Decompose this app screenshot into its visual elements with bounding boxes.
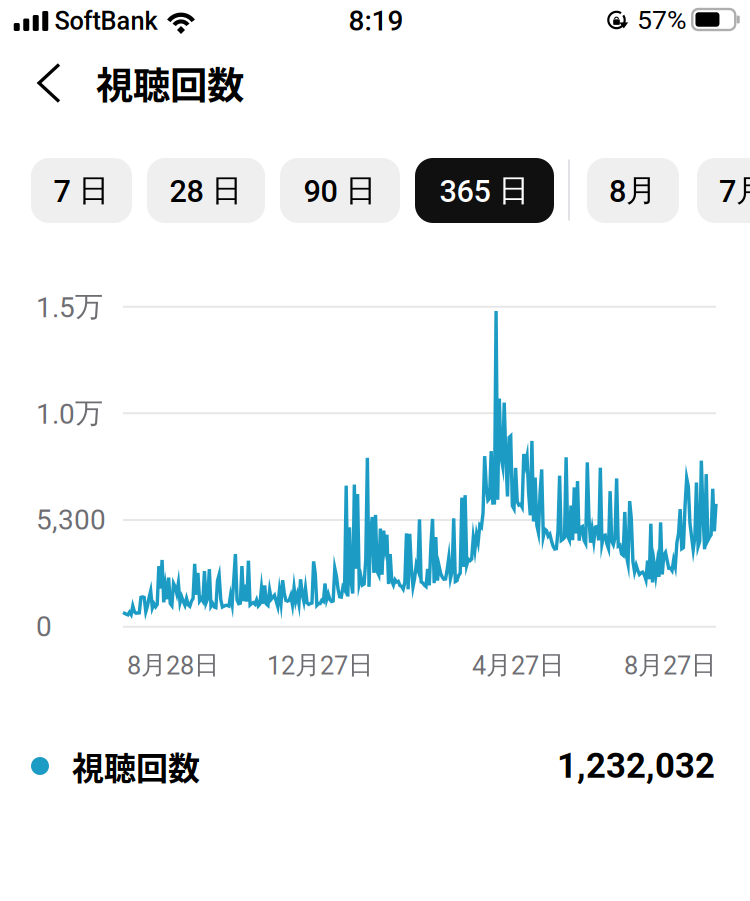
- staticText: 8月27日: [624, 649, 716, 681]
- staticText: 5,300: [36, 504, 106, 536]
- staticText: 28 日: [169, 171, 242, 210]
- staticText: 1.0万: [36, 396, 103, 431]
- staticText: 57%: [637, 4, 687, 36]
- staticText: 8月: [609, 171, 657, 210]
- staticText: 視聴回数: [96, 56, 244, 110]
- staticText: 7 日: [53, 171, 109, 210]
- staticText: 8月28日: [127, 649, 219, 681]
- button[interactable]: 7 日: [31, 158, 132, 223]
- button[interactable]: 365 日: [415, 158, 554, 223]
- staticText: 7月: [719, 171, 750, 210]
- button[interactable]: 90 日: [280, 158, 400, 223]
- button[interactable]: 視聴回数: [0, 729, 750, 803]
- staticText: 視聴回数: [72, 743, 200, 789]
- staticText: 365 日: [439, 171, 529, 210]
- button[interactable]: 8月: [587, 158, 679, 223]
- staticText: 12月27日: [267, 649, 373, 681]
- staticText: 8:19: [348, 5, 403, 37]
- staticText: SoftBank: [54, 6, 157, 36]
- staticText: 1,232,032: [557, 746, 715, 786]
- button[interactable]: 7月: [697, 158, 750, 223]
- staticText: 1.5万: [36, 289, 103, 324]
- button[interactable]: Back: [18, 51, 80, 115]
- staticText: 90 日: [303, 171, 376, 210]
- button[interactable]: 28 日: [147, 158, 265, 223]
- staticText: 0: [36, 610, 52, 643]
- staticText: 4月27日: [472, 649, 564, 681]
